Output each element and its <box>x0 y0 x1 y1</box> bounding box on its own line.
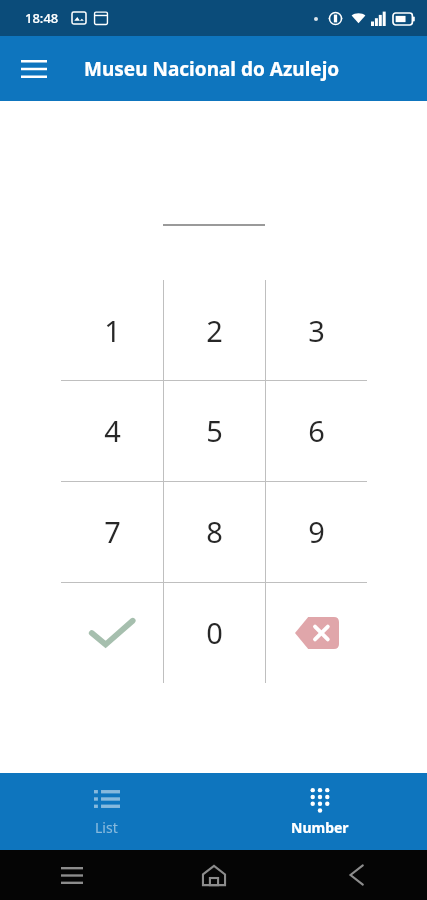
button[interactable]: Open navigation menu <box>10 45 58 93</box>
button[interactable]: 2 <box>164 280 265 380</box>
button[interactable]: 0 <box>164 582 265 683</box>
staticText: 0 <box>206 613 223 652</box>
staticText: List <box>95 818 118 837</box>
staticText: 9 <box>308 512 325 551</box>
staticText: 3 <box>308 311 325 350</box>
button[interactable]: Number <box>213 773 427 850</box>
button[interactable]: 1 <box>61 280 163 380</box>
button[interactable]: List <box>0 773 213 850</box>
staticText: 6 <box>308 411 325 450</box>
staticText: 8 <box>206 512 223 551</box>
staticText: 1 <box>104 311 121 350</box>
staticText: Number <box>291 818 349 837</box>
button[interactable]: 3 <box>266 280 367 380</box>
button[interactable]: Recent apps <box>0 850 143 900</box>
button[interactable]: 9 <box>266 481 367 582</box>
button[interactable]: 5 <box>164 380 265 481</box>
button[interactable]: Confirm <box>61 582 163 683</box>
staticText: Museu Nacional do Azulejo <box>84 56 340 82</box>
button[interactable]: 4 <box>61 380 163 481</box>
staticText: 7 <box>104 512 121 551</box>
button[interactable]: Back <box>285 850 427 900</box>
staticText: 5 <box>206 411 223 450</box>
button[interactable]: 6 <box>266 380 367 481</box>
button[interactable]: 7 <box>61 481 163 582</box>
button[interactable]: 8 <box>164 481 265 582</box>
staticText: 18:48 <box>25 9 59 27</box>
staticText: 2 <box>206 311 223 350</box>
button[interactable]: Home <box>143 850 285 900</box>
button[interactable]: Backspace <box>266 582 367 683</box>
staticText: 4 <box>104 411 121 450</box>
